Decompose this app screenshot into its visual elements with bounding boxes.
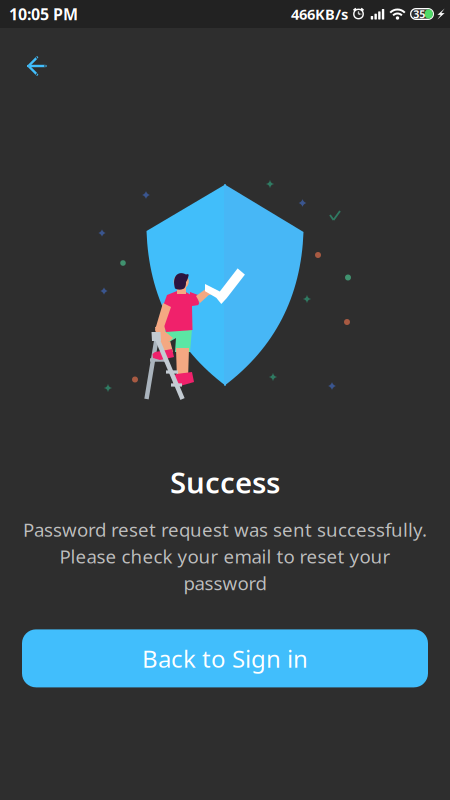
staticText: Success [170, 462, 280, 501]
button[interactable]: Back [24, 44, 68, 88]
staticText: Back to Sign in [142, 642, 308, 674]
staticText: 35 [413, 7, 425, 21]
staticText: Please check your email to reset your [59, 544, 390, 569]
staticText: 466KB/s [291, 4, 348, 24]
staticText: 10:05 PM [9, 3, 78, 25]
staticText: Password reset request was sent successf… [23, 517, 427, 542]
staticText: password [183, 571, 266, 595]
button[interactable]: Back to Sign in [22, 629, 428, 687]
